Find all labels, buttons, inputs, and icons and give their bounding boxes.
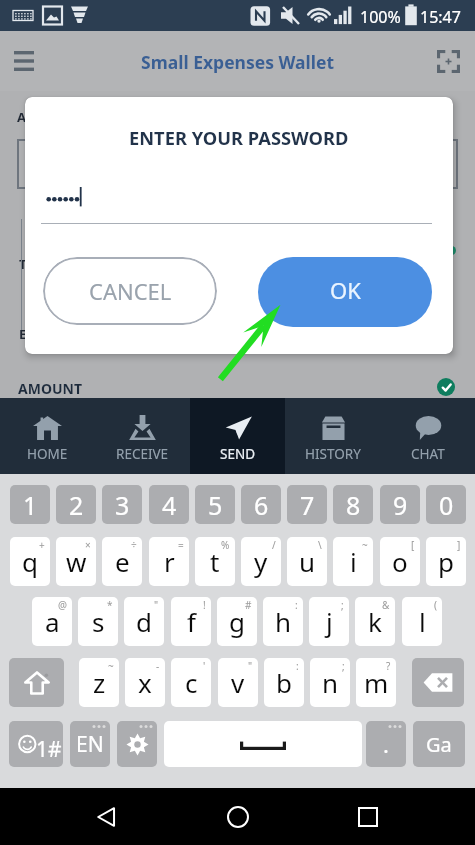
staticText: =	[178, 538, 184, 552]
button[interactable]: a	[32, 597, 72, 646]
button[interactable]: t	[195, 537, 235, 586]
button[interactable]: n	[310, 658, 350, 707]
staticText: m	[364, 665, 389, 700]
button[interactable]: 7	[287, 485, 327, 524]
button[interactable]	[9, 658, 64, 707]
button[interactable]: o	[380, 537, 420, 586]
staticText: 4	[162, 488, 177, 522]
button[interactable]: 1#	[9, 721, 63, 767]
staticText: ~	[108, 659, 114, 673]
staticText: 0	[439, 488, 454, 522]
staticText: j	[326, 604, 333, 639]
button[interactable]: 5	[195, 485, 235, 524]
staticText: !	[203, 598, 206, 612]
button[interactable]: d	[124, 597, 164, 646]
button[interactable]: HOME	[0, 398, 95, 474]
staticText: (	[434, 598, 437, 612]
button[interactable]	[117, 721, 157, 767]
button[interactable]: Back	[83, 793, 131, 841]
button[interactable]: r	[149, 537, 189, 586]
button[interactable]: 2	[56, 485, 96, 524]
staticText: v	[231, 665, 245, 700]
button[interactable]: f	[171, 597, 211, 646]
button[interactable]: 6	[241, 485, 281, 524]
staticText: 3	[115, 488, 130, 522]
button[interactable]: u	[287, 537, 327, 586]
staticText: y	[254, 544, 268, 579]
staticText: 7	[300, 488, 315, 522]
button[interactable]: Menu	[4, 41, 44, 81]
button[interactable]: s	[78, 597, 118, 646]
staticText: x	[138, 665, 152, 700]
staticText: ;	[342, 659, 345, 673]
staticText: t	[210, 544, 220, 579]
button[interactable]: RECEIVE	[95, 398, 190, 474]
staticText: ;	[341, 598, 344, 612]
button[interactable]: i	[333, 537, 373, 586]
staticText: HISTORY	[305, 445, 361, 463]
button[interactable]: 0	[426, 485, 466, 524]
button[interactable]: HISTORY	[285, 398, 380, 474]
button[interactable]: l	[402, 597, 442, 646]
button[interactable]	[412, 658, 464, 707]
staticText: CHAT	[411, 445, 445, 463]
button[interactable]: w	[56, 537, 96, 586]
staticText: n	[322, 665, 339, 700]
button[interactable]: 8	[333, 485, 373, 524]
button[interactable]: h	[263, 597, 303, 646]
button[interactable]: Recents	[344, 793, 392, 841]
button[interactable]: y	[241, 537, 281, 586]
button[interactable]: j	[309, 597, 349, 646]
staticText: [	[411, 538, 415, 552]
button[interactable]: m	[356, 658, 396, 707]
button[interactable]: x	[125, 658, 165, 707]
staticText: ~	[362, 538, 368, 552]
staticText: \	[318, 538, 322, 552]
staticText: o	[392, 544, 408, 579]
button[interactable]: CHAT	[380, 398, 475, 474]
button[interactable]: z	[79, 658, 119, 707]
button[interactable]: EN	[70, 721, 110, 767]
staticText: ?	[386, 659, 391, 673]
button[interactable]: q	[10, 537, 50, 586]
button[interactable]: 4	[149, 485, 189, 524]
staticText: '	[203, 659, 206, 673]
staticText: /	[272, 538, 276, 552]
staticText: -	[156, 659, 160, 673]
staticText: c	[185, 665, 198, 700]
button[interactable]: 1	[10, 485, 50, 524]
button[interactable]: c	[171, 658, 211, 707]
button[interactable]: v	[218, 658, 258, 707]
button[interactable]: b	[264, 658, 304, 707]
staticText: ×	[85, 538, 91, 552]
button[interactable]: p	[426, 537, 466, 586]
staticText: a	[45, 604, 60, 639]
staticText: ÷	[131, 538, 137, 552]
staticText: b	[276, 665, 292, 700]
staticText: ENTER YOUR PASSWORD	[129, 125, 349, 150]
button[interactable]: Ga	[413, 721, 465, 767]
staticText: :	[295, 598, 298, 612]
staticText: HOME	[27, 445, 68, 463]
staticText: s	[92, 604, 105, 639]
button[interactable]: k	[355, 597, 395, 646]
staticText: E	[19, 325, 27, 343]
staticText: %	[221, 538, 230, 552]
button[interactable]: g	[217, 597, 257, 646]
button[interactable]: SEND	[190, 398, 285, 474]
button[interactable]: e	[102, 537, 142, 586]
staticText: :	[296, 659, 299, 673]
button[interactable]: 9	[380, 485, 420, 524]
button[interactable]: 3	[102, 485, 142, 524]
staticText: *	[107, 598, 113, 612]
staticText: 15:47	[420, 6, 461, 28]
staticText: Small Expenses Wallet	[141, 50, 335, 74]
button[interactable]	[164, 721, 362, 767]
button[interactable]: CANCEL	[43, 257, 217, 325]
staticText: z	[93, 665, 106, 700]
staticText: r	[164, 544, 175, 579]
button[interactable]: OK	[258, 257, 432, 327]
button[interactable]: Fullscreen	[428, 41, 468, 81]
button[interactable]: .	[366, 721, 406, 767]
button[interactable]: Home	[214, 793, 262, 841]
